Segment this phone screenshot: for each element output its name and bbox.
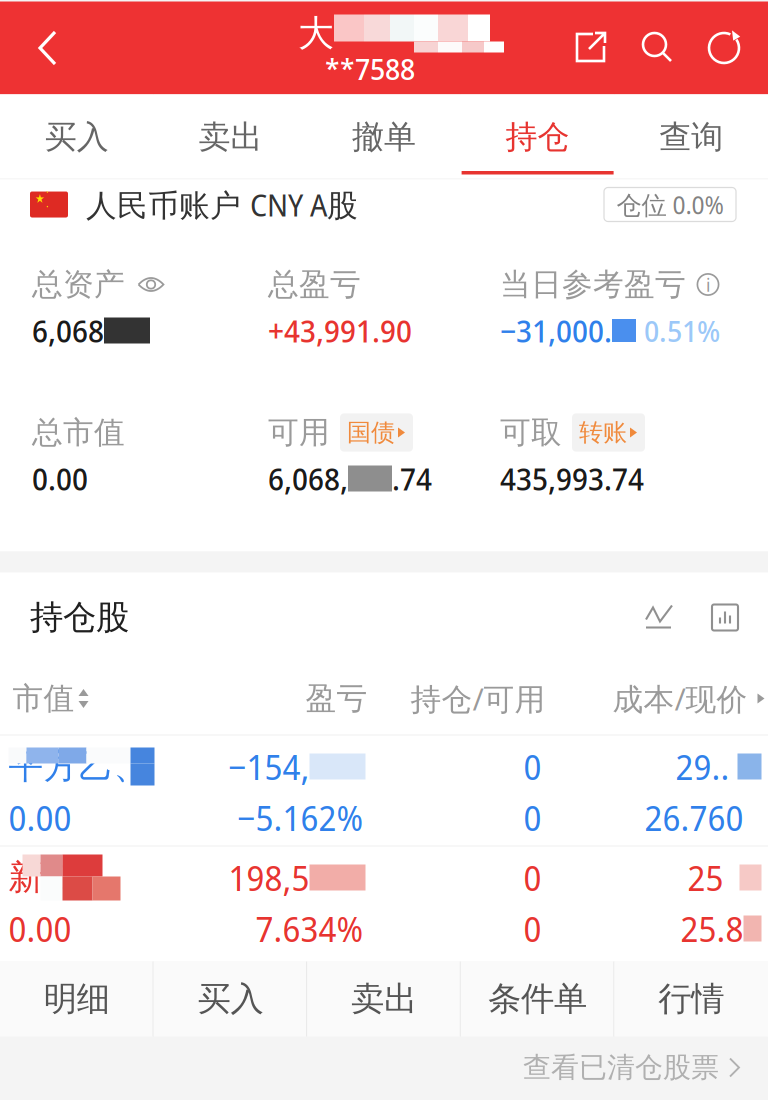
staticText: 198,5 (228, 854, 309, 901)
staticText: +43,991.90 (268, 310, 412, 351)
staticText: 持仓股 (30, 596, 129, 638)
staticText: 乙 (78, 745, 113, 788)
staticText: 人民币账户 CNY A股 (86, 184, 358, 225)
staticText: 29.. (675, 743, 729, 790)
staticText: 条件单 (488, 978, 587, 1020)
button[interactable]: Bar chart (703, 595, 747, 639)
staticText: 0.00 (32, 458, 88, 499)
button[interactable]: 平方 (0, 735, 768, 845)
staticText: 买入 (197, 978, 263, 1020)
staticText: 0 (523, 905, 541, 952)
staticText: 26.760 (644, 794, 743, 841)
staticText: 卖出 (351, 978, 417, 1020)
staticText: −154, (228, 743, 309, 790)
staticText: 0 (523, 794, 541, 841)
staticText: 撤单 (352, 117, 416, 157)
staticText: 大 (298, 11, 334, 56)
staticText: 持仓/可用 (410, 678, 545, 719)
button[interactable]: Search (638, 28, 676, 68)
staticText: 0 (523, 743, 541, 790)
staticText: 行情 (658, 978, 724, 1020)
button[interactable]: 转账 (572, 413, 645, 452)
staticText: −5.162% (237, 794, 363, 841)
staticText: 0 (523, 854, 541, 901)
staticText: · (46, 198, 49, 213)
staticText: 新 (8, 856, 43, 899)
button[interactable]: 卖出 (307, 961, 461, 1036)
staticText: 查询 (659, 117, 723, 157)
button[interactable]: 国债 (340, 413, 413, 452)
button[interactable]: Back (0, 1, 110, 94)
button[interactable]: Share (572, 28, 610, 68)
staticText: · (46, 184, 49, 198)
staticText: 7.634% (255, 905, 363, 952)
staticText: 成本/现价 (612, 678, 747, 719)
button[interactable]: Refresh (704, 27, 744, 69)
button[interactable]: 买入 (154, 961, 307, 1036)
staticText: 可用 (268, 413, 330, 452)
staticText: 转账 (579, 417, 627, 448)
button[interactable]: 买入 (0, 94, 154, 179)
button[interactable]: 条件单 (461, 961, 614, 1036)
button[interactable]: 明细 (0, 961, 154, 1036)
staticText: **7588 (325, 48, 415, 88)
button[interactable]: Line chart (637, 595, 681, 639)
staticText: 总盈亏 (268, 265, 361, 304)
staticText: 查看已清仓股票 (523, 1050, 719, 1085)
button[interactable]: 卖出 (154, 94, 307, 179)
staticText: 卖出 (198, 117, 262, 157)
button[interactable]: 查看已清仓股票 (523, 1036, 768, 1098)
button[interactable]: 新 (0, 846, 768, 956)
staticText: 可取 (500, 413, 562, 452)
button[interactable]: 行情 (614, 961, 768, 1036)
staticText: 总市值 (32, 413, 125, 452)
staticText: ★ (35, 191, 45, 205)
staticText: i (706, 272, 710, 297)
staticText: 0.51% (644, 310, 720, 350)
staticText: 435,993.74 (500, 458, 644, 499)
staticText: 明细 (44, 978, 110, 1020)
staticText: 盈亏 (305, 679, 367, 718)
button[interactable]: 查询 (614, 94, 768, 179)
staticText: 持仓 (506, 117, 570, 157)
staticText: .74 (392, 458, 432, 499)
staticText: 总资产 (32, 265, 125, 304)
staticText: 国债 (347, 417, 395, 448)
staticText: 、 (113, 745, 148, 788)
staticText: 二 (43, 856, 78, 899)
button[interactable]: 持仓 (461, 94, 614, 179)
staticText: −31,000. (500, 310, 612, 351)
staticText: 25 (687, 854, 723, 901)
staticText: 平方 (8, 745, 78, 788)
button[interactable]: 撤单 (307, 94, 461, 179)
staticText: 市值 (12, 679, 74, 718)
staticText: 买入 (45, 117, 109, 157)
staticText: 6,068 (32, 310, 104, 351)
staticText: 25.8 (680, 905, 743, 952)
staticText: 当日参考盈亏 (500, 265, 686, 304)
staticText: 6,068, (268, 458, 348, 499)
button[interactable]: 仓位 0.0% (604, 187, 736, 221)
staticText: 仓位 0.0% (616, 187, 723, 222)
staticText: 0.00 (8, 794, 71, 841)
staticText: 0.00 (8, 905, 71, 952)
